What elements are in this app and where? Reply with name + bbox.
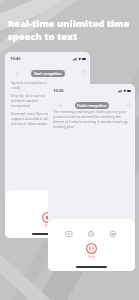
staticText: External voice files now support automat…	[11, 111, 55, 126]
button[interactable]: Search	[81, 70, 87, 76]
button[interactable]: Play	[65, 230, 73, 238]
staticText: The meeting now begins thank you for you…	[53, 109, 131, 129]
staticText: 开始	[44, 224, 51, 228]
staticText: Speech recognition is ready	[11, 80, 55, 90]
button[interactable]: Finish recognition	[75, 102, 109, 109]
button[interactable]: Record	[42, 212, 53, 223]
staticText: 暂停	[88, 255, 95, 259]
button[interactable]: Search	[126, 102, 132, 108]
button[interactable]: Camera	[109, 230, 117, 238]
staticText: Start recognition	[34, 71, 62, 76]
button[interactable]: Start recognition	[31, 70, 65, 77]
button[interactable]: Timer	[87, 230, 95, 238]
staticText: Finish recognition	[77, 103, 107, 108]
staticText: Real-time unlimited time	[8, 17, 130, 30]
button[interactable]: Pause	[86, 243, 97, 254]
staticText: 10:26	[53, 88, 64, 94]
staticText: Directly click start to perform speech r…	[11, 93, 55, 108]
staticText: 10:45	[10, 56, 21, 62]
staticText: speech to text	[8, 30, 78, 43]
